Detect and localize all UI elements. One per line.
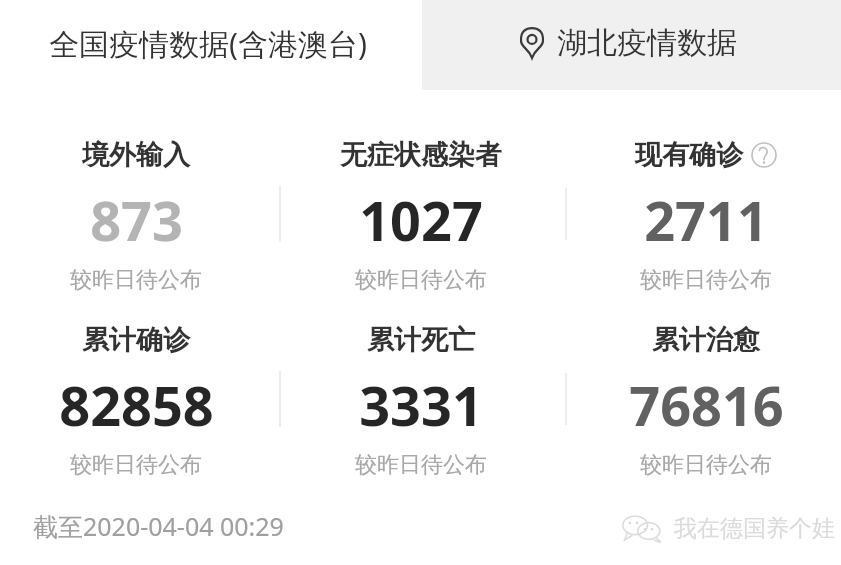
staticText: 873: [90, 183, 183, 257]
staticText: 湖北疫情数据: [557, 24, 737, 62]
other: WeChat official account: [622, 513, 666, 543]
staticText: 较昨日待公布: [640, 266, 772, 294]
other: Help about current confirmed: [751, 142, 777, 168]
staticText: 累计死亡: [367, 323, 475, 357]
staticText: 我在德国养个娃: [674, 514, 835, 543]
button[interactable]: 全国疫情数据(含港澳台): [0, 0, 422, 90]
staticText: 累计确诊: [82, 323, 190, 357]
staticText: 较昨日待公布: [70, 266, 202, 294]
button[interactable]: 累计治愈: [566, 323, 841, 479]
other: Hubei location: [518, 26, 546, 60]
staticText: 较昨日待公布: [355, 266, 487, 294]
staticText: 无症状感染者: [340, 138, 502, 172]
staticText: 境外输入: [82, 138, 190, 172]
staticText: 82858: [59, 368, 214, 442]
button[interactable]: 累计确诊: [0, 323, 276, 479]
staticText: 76816: [629, 368, 784, 442]
button[interactable]: Hubei location: [422, 0, 841, 90]
staticText: 3331: [359, 368, 483, 442]
staticText: 较昨日待公布: [640, 451, 772, 479]
staticText: 截至2020-04-04 00:29: [33, 509, 284, 543]
staticText: 累计治愈: [652, 323, 760, 357]
button[interactable]: 无症状感染者: [281, 138, 561, 294]
staticText: 2711: [644, 183, 768, 257]
button[interactable]: 境外输入: [0, 138, 276, 294]
staticText: 较昨日待公布: [70, 451, 202, 479]
button[interactable]: 现有确诊: [566, 138, 841, 294]
staticText: 较昨日待公布: [355, 451, 487, 479]
staticText: 1027: [359, 183, 483, 257]
button[interactable]: 累计死亡: [281, 323, 561, 479]
staticText: 现有确诊: [635, 138, 743, 172]
staticText: 全国疫情数据(含港澳台): [49, 23, 367, 64]
